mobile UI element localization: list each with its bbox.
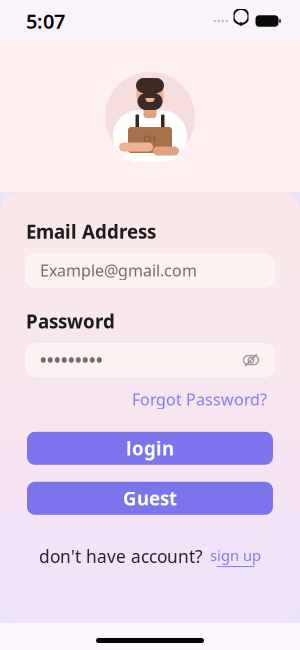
button[interactable]: Guest [27,482,273,515]
button[interactable]: Example@gmail.com [26,254,274,287]
button[interactable]: sign up [210,546,261,567]
staticText: Email Address [26,219,156,244]
staticText: Example@gmail.com [40,260,197,281]
staticText: 5:07 [26,8,65,34]
button[interactable]: Forgot Password? [132,389,267,410]
button[interactable]: login [27,432,273,465]
staticText: login [126,436,174,461]
staticText: sign up [210,546,261,565]
staticText: Password [26,309,115,334]
staticText: don't have account? [39,545,203,568]
staticText: Guest [123,486,177,511]
button[interactable]: ••••••••• [26,344,274,377]
staticText: Forgot Password? [132,389,267,410]
staticText: ••••••••• [40,349,103,372]
